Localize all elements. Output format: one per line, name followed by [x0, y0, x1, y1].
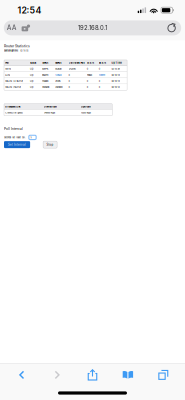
staticText: Broadband Link [5, 105, 20, 108]
staticText: Up [30, 86, 33, 88]
staticText: Poll Interval [4, 127, 23, 131]
staticText: Tx B/s [87, 62, 94, 64]
staticText: WLAN (5GHz) [5, 86, 21, 88]
button[interactable]: Stop [43, 141, 57, 148]
staticText: RxPkts [55, 62, 61, 64]
staticText: 0 [99, 68, 100, 70]
button[interactable]: Extensions [20, 20, 33, 35]
button[interactable]: Bookmarks [110, 363, 146, 386]
staticText: Rx B/s [99, 62, 106, 64]
button[interactable]: Reload [162, 20, 181, 35]
staticText: WLAN (2.4GHz) [5, 80, 23, 82]
staticText: 21035 [55, 80, 60, 82]
staticText: 192.168.0.1 [78, 24, 107, 31]
button[interactable]: Back [4, 363, 39, 386]
button[interactable]: AA [4, 20, 20, 35]
staticText: 109979 [99, 74, 105, 76]
staticText: Up Time [111, 62, 121, 64]
staticText: TxPkts [42, 62, 48, 64]
staticText: 549000 kbps [44, 111, 55, 114]
staticText: WAN [5, 68, 11, 70]
staticText: Up [30, 74, 33, 76]
staticText: Up [30, 80, 33, 82]
staticText: 2752542 [69, 68, 76, 70]
staticText: Stop [47, 143, 54, 146]
staticText: LAN [5, 74, 10, 76]
staticText: 150684 [42, 80, 48, 82]
staticText: AA [7, 24, 17, 32]
staticText: 02:10:13 [111, 80, 119, 82]
staticText: 79863 [87, 74, 92, 76]
staticText: Seconds (at least 5s): [4, 136, 26, 139]
staticText: 0 [87, 68, 88, 70]
staticText: Status [30, 62, 36, 64]
staticText: Router Statistics [4, 44, 30, 48]
button[interactable]: Share [75, 363, 110, 386]
staticText: System Up Time [4, 50, 18, 52]
staticText: 653638 [55, 68, 61, 70]
staticText: Up [30, 68, 33, 70]
staticText: 7604208 [42, 86, 49, 88]
button[interactable]: Tabs [146, 363, 181, 386]
button[interactable]: Set Interval [4, 141, 30, 148]
staticText: 5 [30, 136, 31, 139]
staticText: 02:10:39 [111, 68, 119, 70]
staticText: Collisions Pkts [69, 62, 85, 64]
staticText: Connection Speed [5, 111, 22, 114]
staticText: 12:54 [17, 5, 41, 15]
button[interactable]: 192.168.0.1 [78, 20, 107, 35]
staticText: Downstream [44, 105, 57, 108]
staticText: 79200 kbps [81, 111, 91, 114]
staticText: 02:10:55 [20, 49, 28, 52]
staticText: 856770 [42, 74, 48, 76]
staticText: Upstream [81, 105, 91, 108]
staticText: 02:10:13 [111, 74, 119, 76]
staticText: Port [5, 62, 9, 64]
staticText: 02:10:12 [111, 86, 119, 88]
staticText: 124564 [55, 74, 61, 76]
staticText: Set Interval [8, 143, 26, 146]
button[interactable]: Forward [39, 363, 75, 386]
staticText: 2324003 [55, 86, 62, 88]
staticText: 609145 [42, 68, 48, 70]
